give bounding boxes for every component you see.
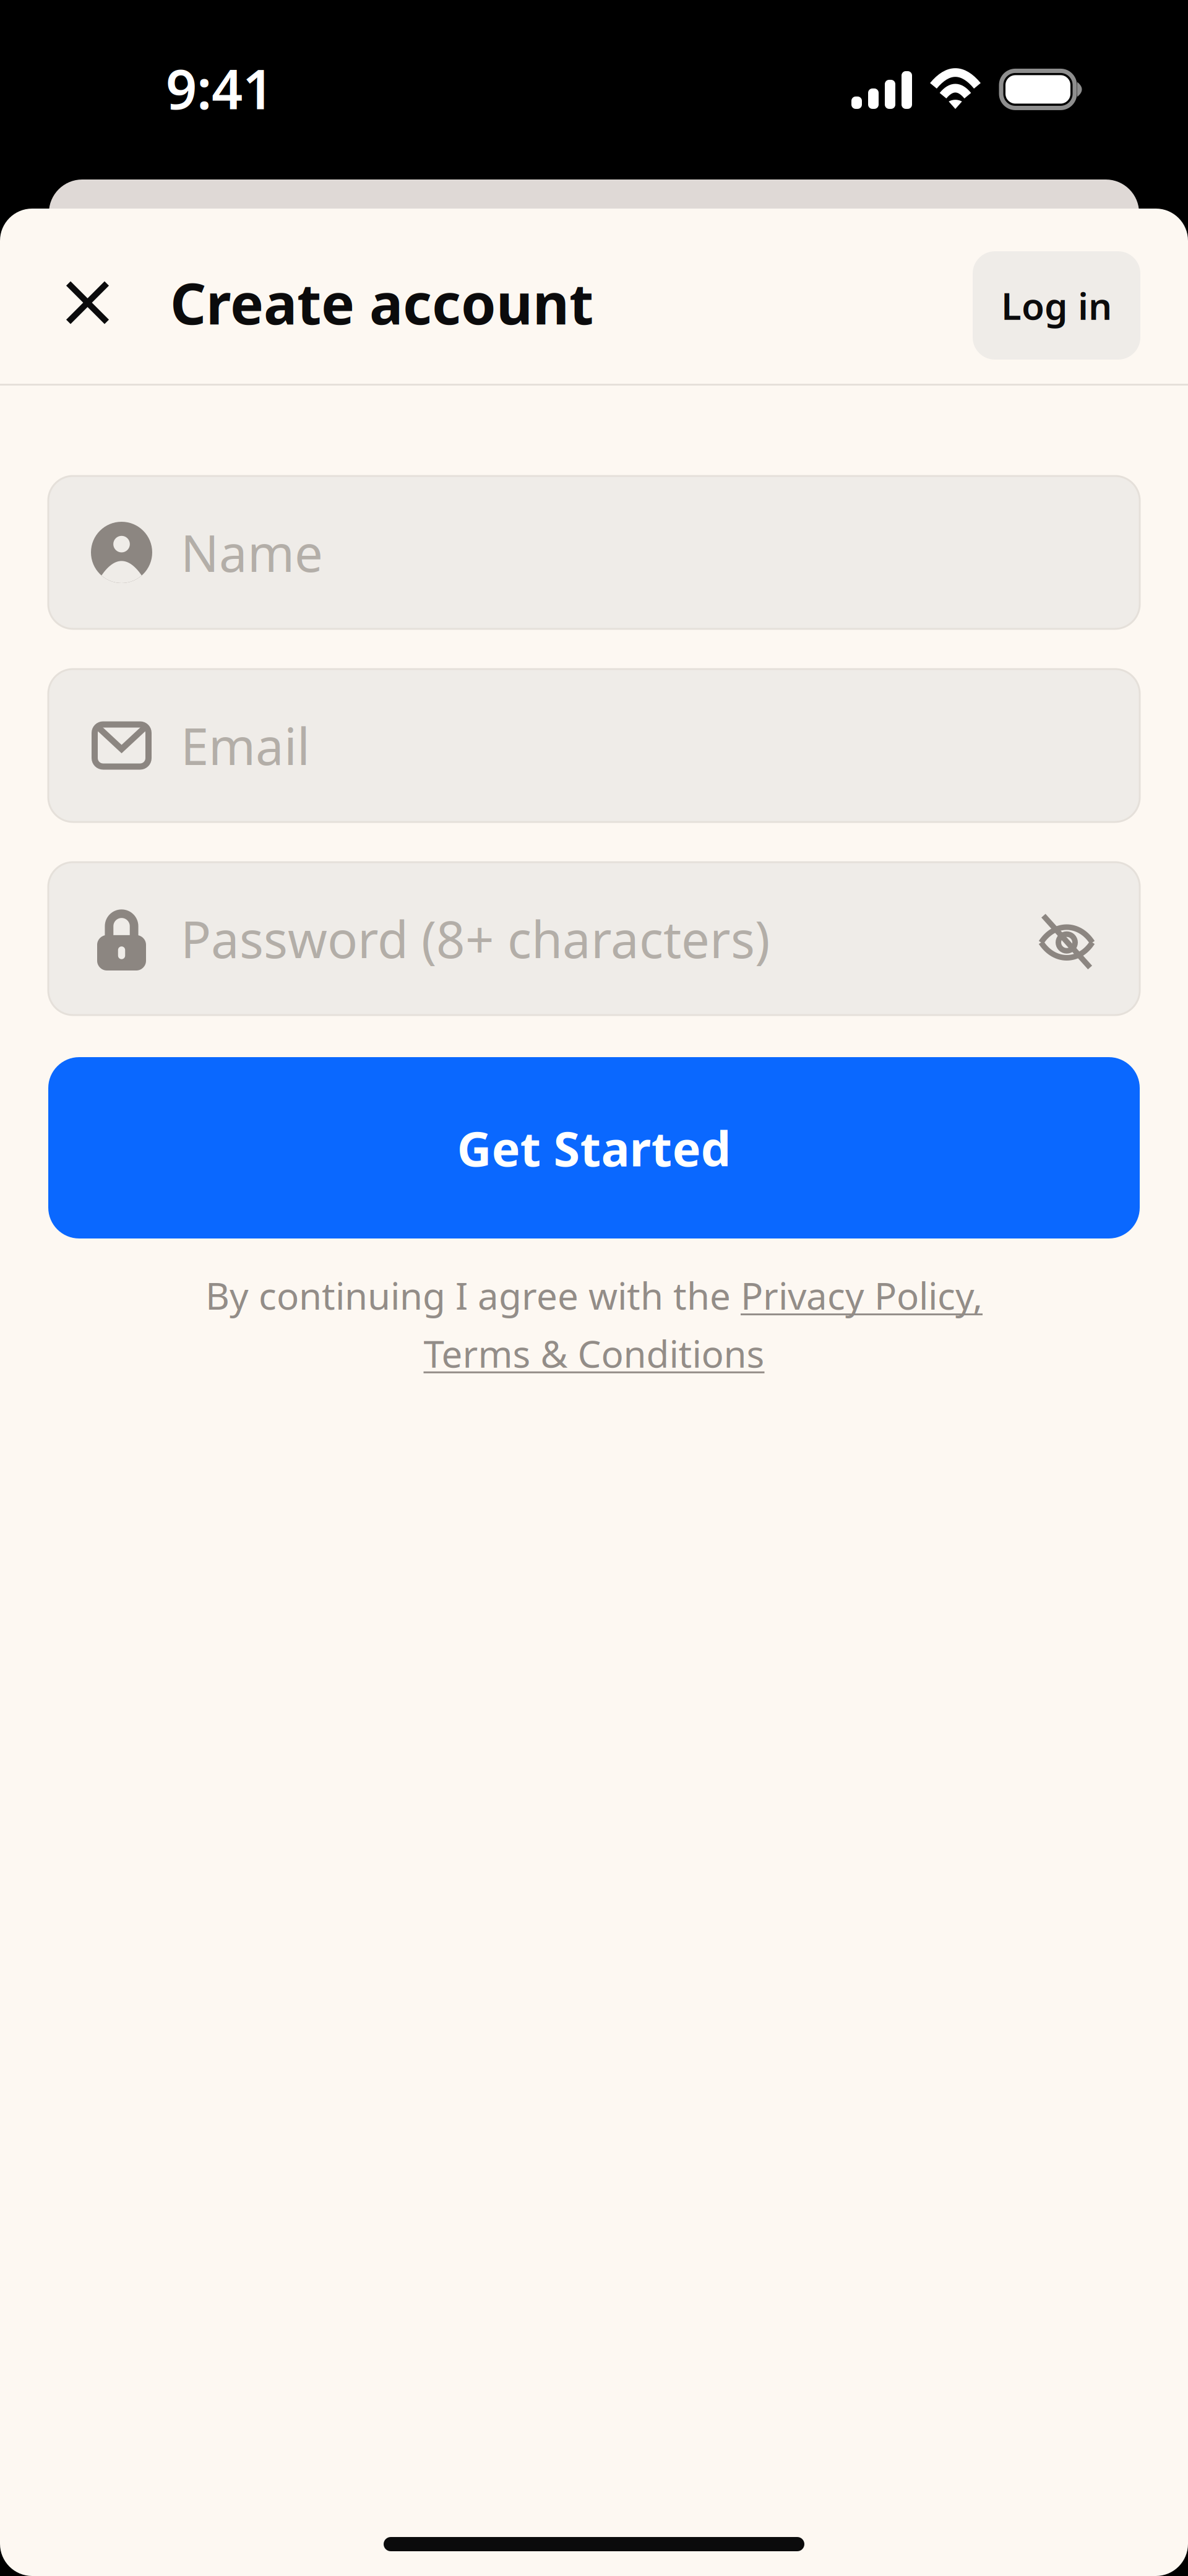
- staticText: Password (8+ characters): [181, 905, 770, 972]
- staticText: Email: [181, 712, 310, 779]
- button[interactable]: By continuing I agree with the Privacy P…: [205, 1271, 983, 1320]
- button[interactable]: Close: [40, 244, 136, 361]
- staticText: Get Started: [457, 1116, 731, 1180]
- staticText: 9:41: [166, 52, 273, 124]
- button[interactable]: Terms & Conditions: [424, 1329, 764, 1378]
- button[interactable]: Email: [48, 669, 1140, 822]
- button[interactable]: Log in: [973, 251, 1140, 360]
- staticText: Log in: [1001, 281, 1112, 330]
- staticText: Terms & Conditions: [424, 1329, 764, 1378]
- button[interactable]: Name: [48, 476, 1140, 629]
- button[interactable]: Password (8+ characters): [48, 862, 1140, 1015]
- button[interactable]: Show password: [1027, 904, 1106, 973]
- button[interactable]: Create account: [136, 244, 593, 361]
- staticText: Create account: [170, 265, 593, 340]
- staticText: By continuing I agree with the Privacy P…: [205, 1271, 983, 1320]
- staticText: Name: [181, 519, 323, 586]
- button[interactable]: Get Started: [48, 1057, 1140, 1238]
